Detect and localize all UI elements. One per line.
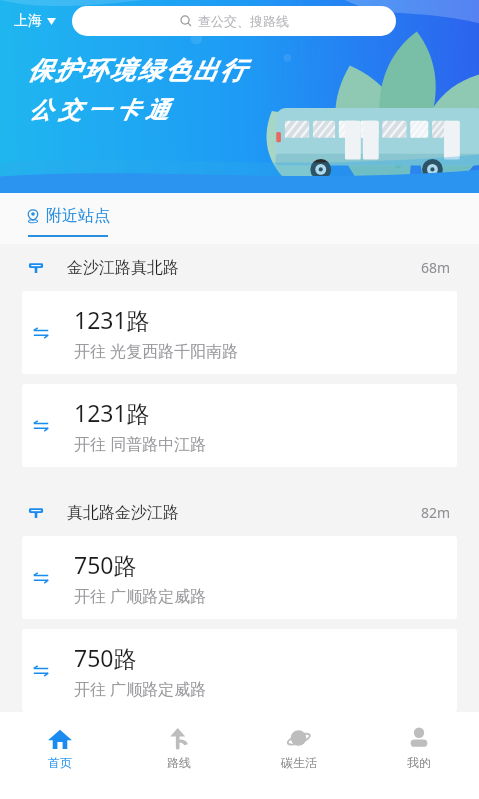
staticText: 1231路 xyxy=(74,304,150,335)
staticText: 公交一卡通 xyxy=(26,96,171,125)
button[interactable]: 首页 xyxy=(0,712,119,770)
staticText: 真北路金沙江路 xyxy=(67,503,421,523)
button[interactable]: 查公交、搜路线 xyxy=(72,6,396,36)
staticText: 68m xyxy=(421,258,451,277)
staticText: 金沙江路真北路 xyxy=(67,258,421,278)
staticText: 开往 光复西路千阳南路 xyxy=(74,340,239,362)
button[interactable]: 1231路 xyxy=(22,291,457,374)
staticText: 上海 xyxy=(14,12,42,30)
button[interactable]: 1231路 xyxy=(22,384,457,467)
staticText: 首页 xyxy=(48,755,72,770)
button[interactable]: 路线 xyxy=(119,712,239,770)
staticText: 开往 广顺路定威路 xyxy=(74,678,207,700)
staticText: 查公交、搜路线 xyxy=(198,13,289,29)
staticText: 1231路 xyxy=(74,397,150,428)
staticText: 我的 xyxy=(407,755,431,770)
staticText: 路线 xyxy=(167,755,191,770)
button[interactable]: 金沙江路真北路 xyxy=(0,244,479,291)
staticText: 开往 广顺路定威路 xyxy=(74,585,207,607)
button[interactable]: 碳生活 xyxy=(239,712,359,770)
button[interactable]: 上海 xyxy=(10,8,60,34)
staticText: 碳生活 xyxy=(281,755,317,770)
staticText: 开往 同普路中江路 xyxy=(74,433,207,455)
button[interactable]: 附近站点 xyxy=(26,193,110,237)
button[interactable]: 750路 xyxy=(22,629,457,712)
button[interactable]: 我的 xyxy=(359,712,479,770)
staticText: 750路 xyxy=(74,642,137,673)
staticText: 82m xyxy=(421,503,451,522)
staticText: 保护环境绿色出行 xyxy=(26,55,246,86)
staticText: 750路 xyxy=(74,549,137,580)
button[interactable]: 真北路金沙江路 xyxy=(0,489,479,536)
button[interactable]: 750路 xyxy=(22,536,457,619)
staticText: 附近站点 xyxy=(46,206,110,226)
